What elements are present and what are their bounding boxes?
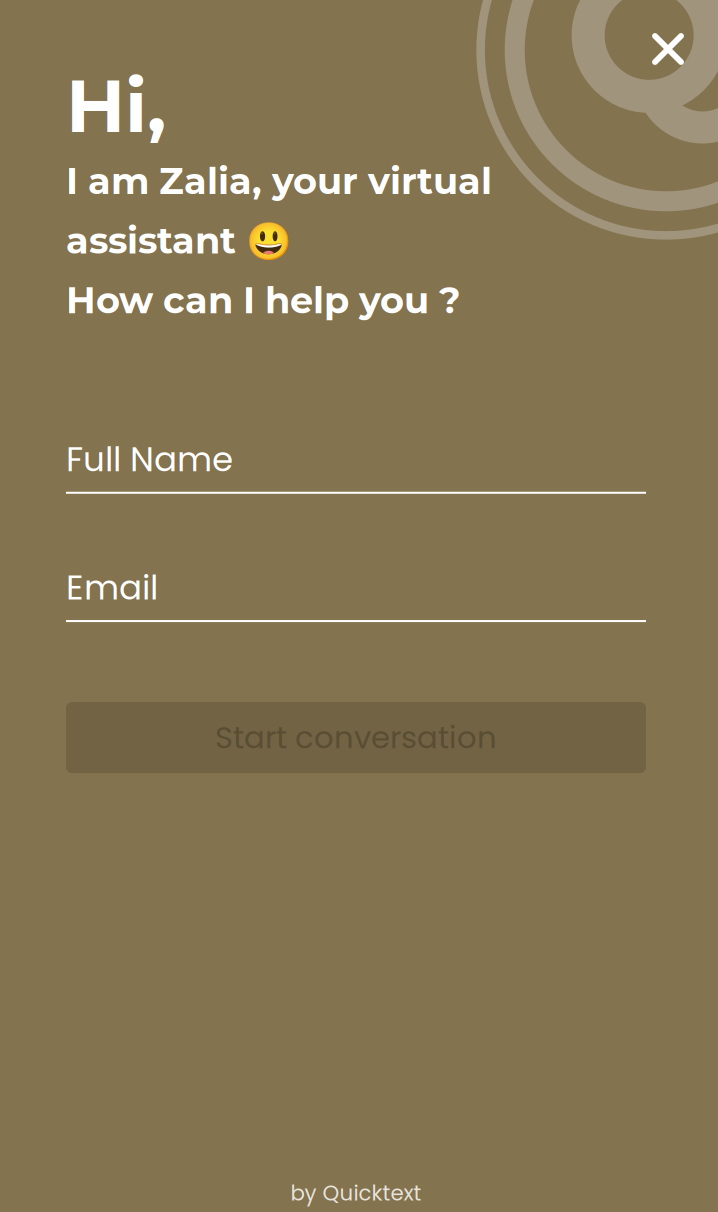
staticText: assistant 😃 xyxy=(66,218,292,263)
staticText: Full Name xyxy=(66,435,233,483)
button[interactable]: Start conversation xyxy=(66,702,646,773)
staticText: Hi, xyxy=(66,61,166,150)
staticText: I am Zalia, your virtual xyxy=(66,158,492,203)
staticText: Start conversation xyxy=(215,716,497,759)
staticText: How can I help you ? xyxy=(66,278,461,322)
staticText: by Quicktext xyxy=(290,1178,421,1208)
staticText: Email xyxy=(66,564,158,612)
button[interactable]: Close xyxy=(640,21,696,77)
